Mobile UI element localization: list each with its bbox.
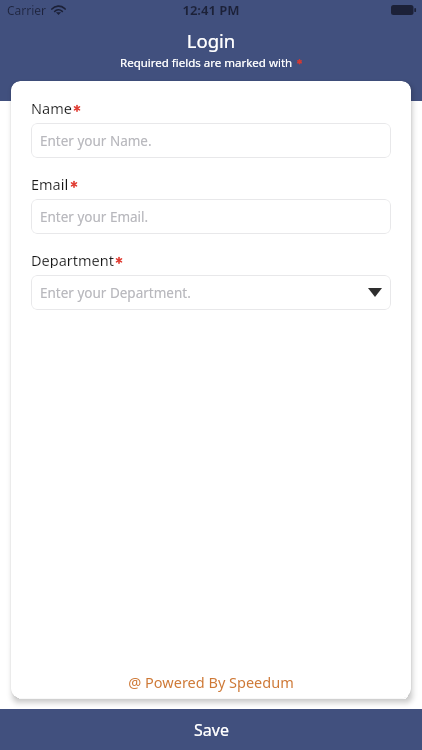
button[interactable]: Enter your Email. (31, 199, 391, 234)
button[interactable]: Enter your Name. (31, 123, 391, 158)
staticText: Email (31, 174, 69, 192)
staticText: @ Powered By Speedum (31, 672, 391, 692)
staticText: Enter your Department. (40, 284, 191, 302)
staticText: Department (31, 250, 114, 268)
button[interactable]: Save (0, 709, 422, 750)
staticText: Enter your Name. (40, 132, 152, 150)
staticText: Carrier (7, 2, 47, 18)
staticText: Required fields are marked with (120, 55, 296, 71)
button[interactable]: Enter your Department. (31, 275, 391, 310)
staticText: 12:41 PM (0, 1, 422, 19)
staticText: Login (0, 28, 422, 53)
staticText: Enter your Email. (40, 208, 149, 226)
staticText: Name (31, 98, 72, 116)
staticText: Save (194, 719, 229, 741)
